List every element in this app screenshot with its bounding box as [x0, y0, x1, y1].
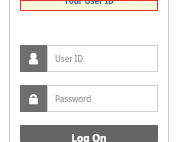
button[interactable]: Password	[20, 85, 158, 112]
staticText: Your User ID	[64, 0, 114, 6]
staticText: Log On	[71, 131, 107, 142]
button[interactable]: User ID	[20, 45, 158, 72]
other: User ID	[20, 45, 47, 72]
staticText: User ID	[55, 53, 84, 64]
staticText: Password	[55, 93, 92, 104]
button[interactable]: Log On	[20, 125, 158, 142]
other: Password	[20, 85, 47, 112]
